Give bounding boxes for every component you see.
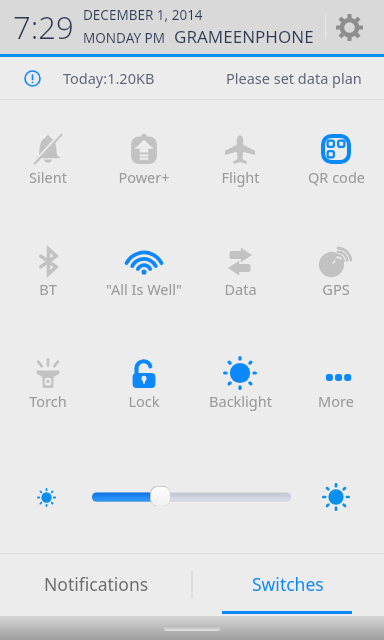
button[interactable]: QR code: [288, 100, 384, 212]
button[interactable]: Power+: [96, 100, 192, 212]
staticText: Data: [224, 279, 257, 299]
button[interactable]: [84, 478, 300, 514]
staticText: Flight: [221, 167, 260, 187]
button[interactable]: More: [288, 324, 384, 436]
button[interactable]: Data: [192, 212, 288, 324]
staticText: Torch: [29, 391, 67, 411]
button[interactable]: Backlight: [192, 324, 288, 436]
button[interactable]: "All Is Well": [96, 212, 192, 324]
button[interactable]: GPS: [288, 212, 384, 324]
button[interactable]: Notifications: [0, 554, 192, 616]
staticText: DECEMBER 1, 2014: [83, 6, 203, 24]
button[interactable]: Lower brightness: [26, 477, 66, 517]
staticText: BT: [39, 279, 57, 299]
button[interactable]: Switches: [192, 554, 384, 616]
button[interactable]: Flight: [192, 100, 288, 212]
staticText: Notifications: [44, 572, 149, 596]
staticText: Today:1.20KB: [63, 68, 155, 88]
button[interactable]: Close shade: [0, 616, 384, 640]
button[interactable]: Settings: [326, 4, 372, 50]
staticText: GPS: [322, 279, 350, 299]
staticText: Power+: [118, 167, 170, 187]
staticText: MONDAY PM: [83, 29, 166, 47]
staticText: Lock: [128, 391, 160, 411]
staticText: Switches: [252, 572, 324, 596]
staticText: Silent: [29, 167, 67, 187]
staticText: "All Is Well": [106, 279, 182, 299]
staticText: 7:29: [13, 6, 74, 48]
button[interactable]: BT: [0, 212, 96, 324]
button[interactable]: Torch: [0, 324, 96, 436]
staticText: QR code: [308, 167, 365, 187]
button[interactable]: Lock: [96, 324, 192, 436]
button[interactable]: Silent: [0, 100, 96, 212]
staticText: More: [318, 391, 354, 411]
staticText: GRAMEENPHONE: [174, 25, 314, 48]
staticText: Backlight: [209, 391, 272, 411]
staticText: Please set data plan: [226, 68, 362, 88]
button[interactable]: Today:1.20KB: [0, 57, 384, 99]
button[interactable]: Raise brightness: [314, 475, 358, 519]
